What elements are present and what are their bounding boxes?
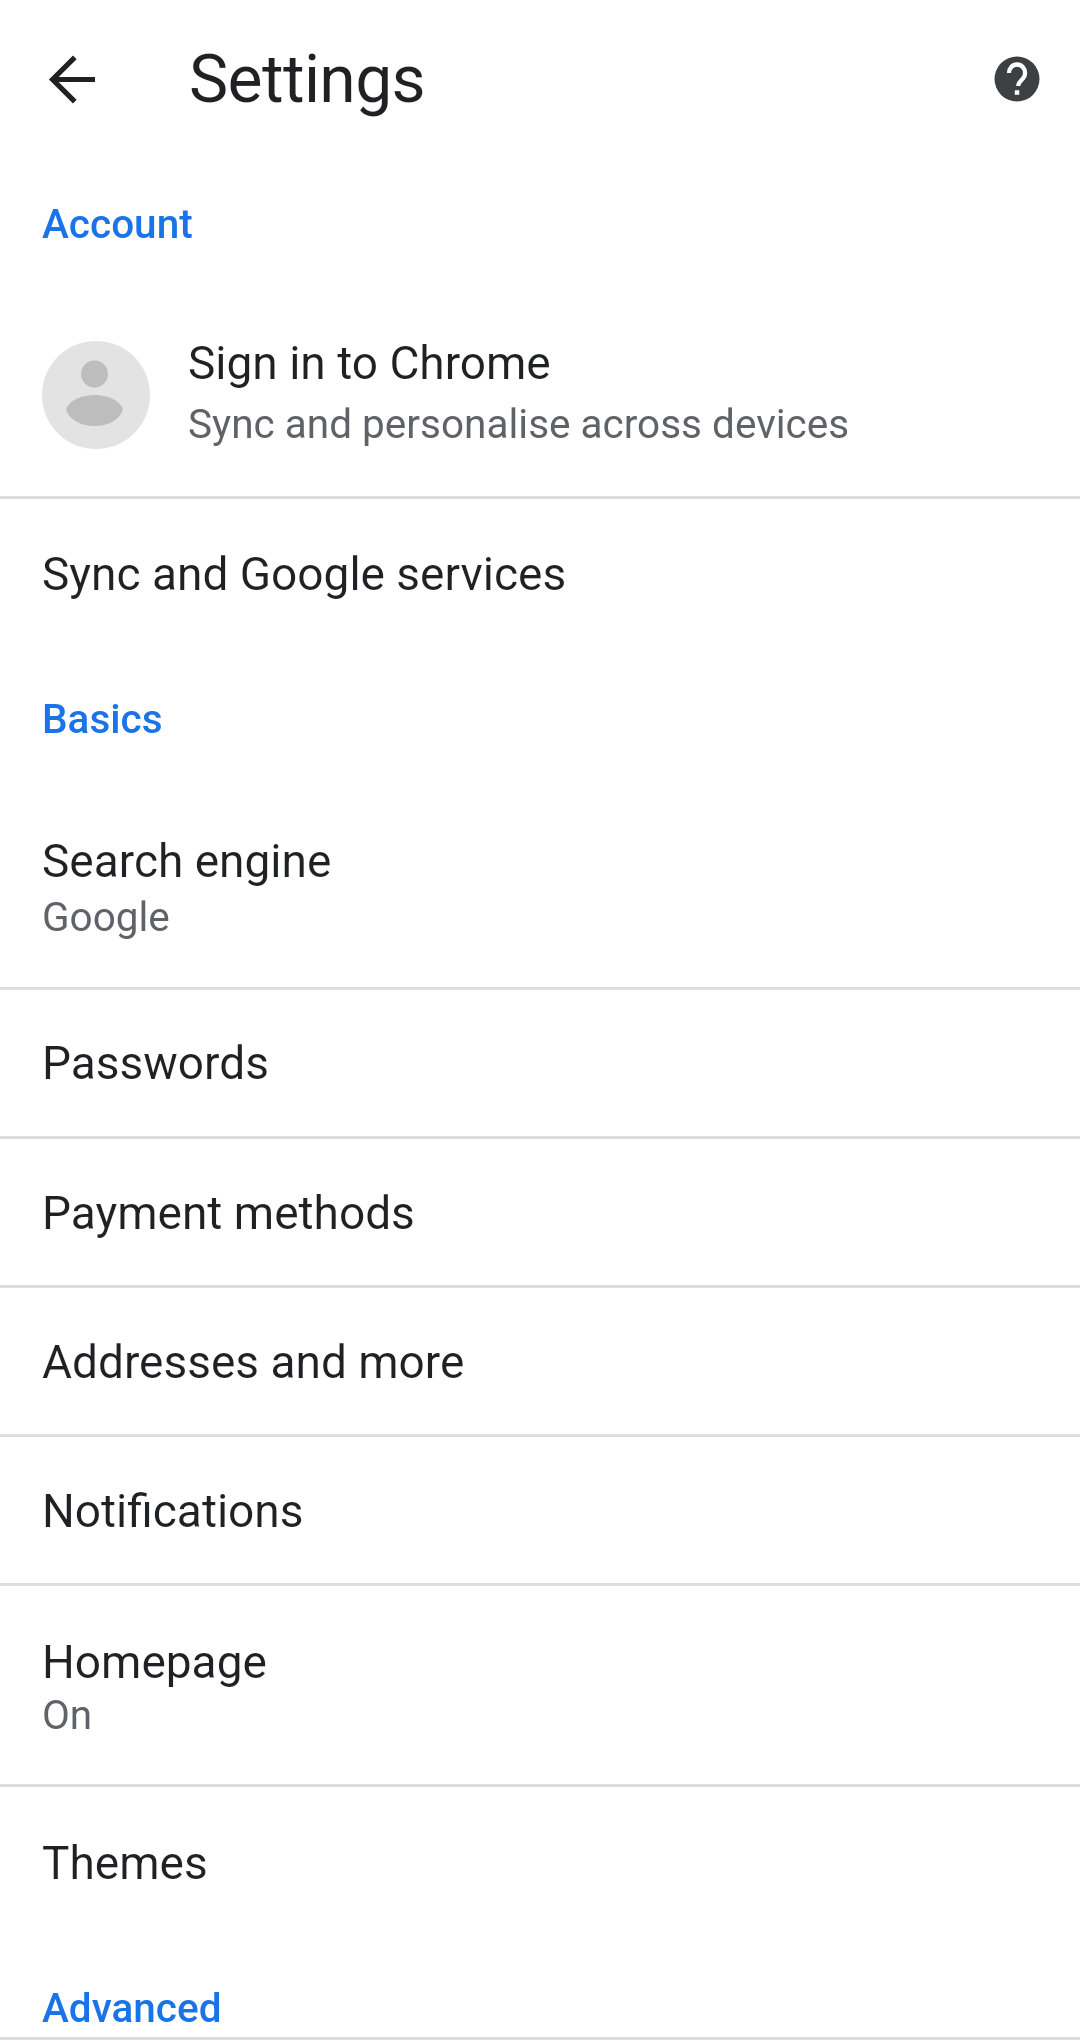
button[interactable]: Homepage	[0, 1584, 1080, 1784]
staticText: Advanced	[42, 1984, 222, 2031]
staticText: Sync and personalise across devices	[188, 400, 850, 447]
staticText: Basics	[42, 695, 163, 742]
staticText: Account	[42, 200, 193, 247]
staticText: Payment methods	[42, 1186, 415, 1240]
button[interactable]: Help and feedback	[973, 35, 1061, 123]
button[interactable]: Search engine	[0, 782, 1080, 987]
staticText: Passwords	[42, 1036, 269, 1090]
staticText: Homepage	[42, 1635, 267, 1689]
button[interactable]: Sign in to Chrome	[0, 290, 1080, 497]
button[interactable]: Payment methods	[0, 1137, 1080, 1285]
button[interactable]: Navigate up	[30, 35, 118, 123]
staticText: On	[42, 1691, 93, 1738]
staticText: Search engine	[42, 834, 332, 888]
button[interactable]: Sync and Google services	[0, 498, 1080, 647]
staticText: Themes	[42, 1836, 208, 1890]
button[interactable]: Notifications	[0, 1434, 1080, 1583]
staticText: Sign in to Chrome	[188, 336, 551, 390]
staticText: Addresses and more	[42, 1335, 465, 1389]
button[interactable]: Addresses and more	[0, 1286, 1080, 1434]
staticText: Google	[42, 893, 170, 940]
button[interactable]: Passwords	[0, 988, 1080, 1136]
staticText: Settings	[189, 41, 426, 118]
staticText: Sync and Google services	[42, 547, 567, 601]
button[interactable]: Themes	[0, 1785, 1080, 1933]
staticText: Notifications	[42, 1484, 304, 1538]
